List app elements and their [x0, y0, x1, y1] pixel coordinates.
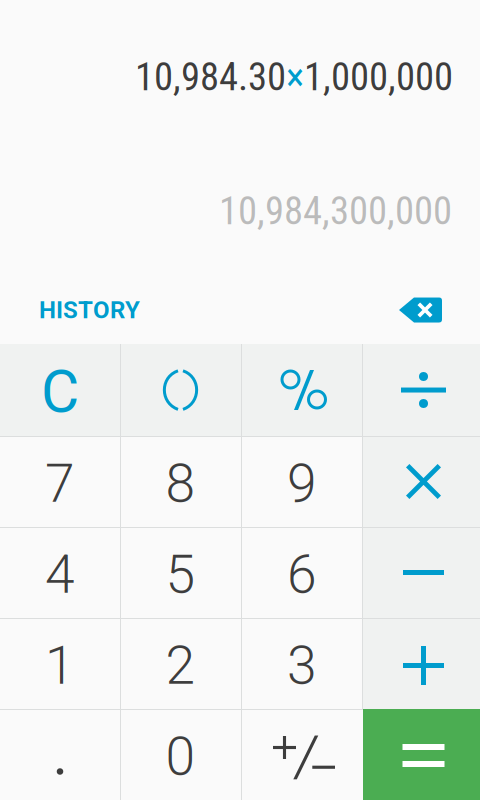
- staticText: 10,984,300,000: [219, 188, 452, 234]
- staticText: HISTORY: [39, 296, 140, 324]
- staticText: 1: [45, 634, 75, 697]
- button[interactable]: 8: [120, 436, 241, 527]
- staticText: 5: [165, 543, 195, 606]
- staticText: 2: [165, 634, 195, 697]
- staticText: 10,984.30: [135, 54, 286, 100]
- button[interactable]: Multiply: [363, 436, 480, 527]
- button[interactable]: Subtract: [363, 527, 480, 618]
- staticText: ×: [286, 54, 304, 100]
- button[interactable]: 0: [120, 709, 241, 800]
- button[interactable]: 9: [241, 436, 363, 527]
- button[interactable]: Plus or minus: [241, 709, 363, 800]
- button[interactable]: Parentheses: [120, 344, 241, 436]
- staticText: 1,000,000: [304, 54, 453, 100]
- staticText: 8: [165, 452, 195, 515]
- button[interactable]: Decimal point: [0, 709, 120, 800]
- button[interactable]: HISTORY: [0, 286, 140, 334]
- staticText: C: [41, 358, 79, 426]
- button[interactable]: 2: [120, 618, 241, 709]
- button[interactable]: 1: [0, 618, 120, 709]
- button[interactable]: 6: [241, 527, 363, 618]
- button[interactable]: Backspace: [380, 286, 461, 334]
- button[interactable]: Divide: [363, 344, 480, 436]
- staticText: 7: [45, 452, 75, 515]
- staticText: 4: [45, 543, 75, 606]
- button[interactable]: 3: [241, 618, 363, 709]
- staticText: 6: [287, 543, 317, 606]
- button[interactable]: 5: [120, 527, 241, 618]
- button[interactable]: 7: [0, 436, 120, 527]
- button[interactable]: 4: [0, 527, 120, 618]
- staticText: 0: [165, 725, 195, 788]
- button[interactable]: C: [0, 344, 120, 436]
- button[interactable]: Add: [363, 618, 480, 709]
- button[interactable]: Percent: [241, 344, 363, 436]
- staticText: 9: [287, 452, 317, 515]
- staticText: 3: [287, 634, 317, 697]
- button[interactable]: Equals: [363, 709, 480, 800]
